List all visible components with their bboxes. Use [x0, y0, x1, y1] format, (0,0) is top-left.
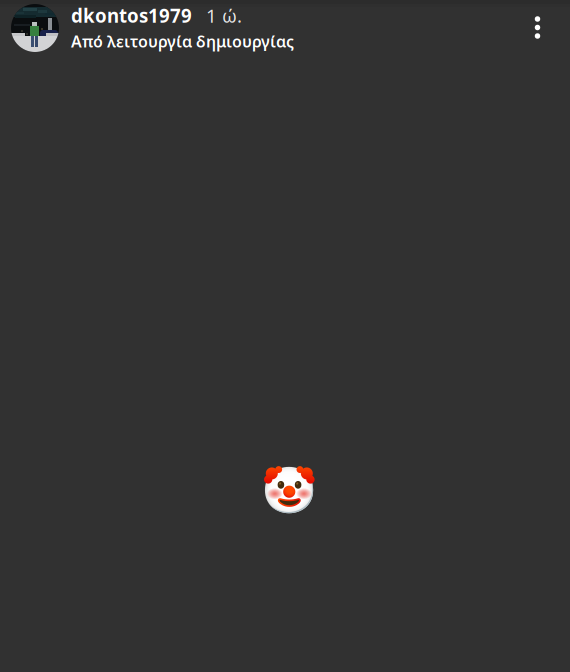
staticText: 1 ώ. [206, 3, 242, 28]
button[interactable]: dkontos1979 profile photo [11, 4, 59, 52]
button[interactable]: More options [521, 4, 551, 48]
staticText: 🤡 [261, 465, 317, 517]
staticText: dkontos1979 [71, 3, 192, 28]
staticText: Από λειτουργία δημιουργίας [71, 31, 294, 52]
